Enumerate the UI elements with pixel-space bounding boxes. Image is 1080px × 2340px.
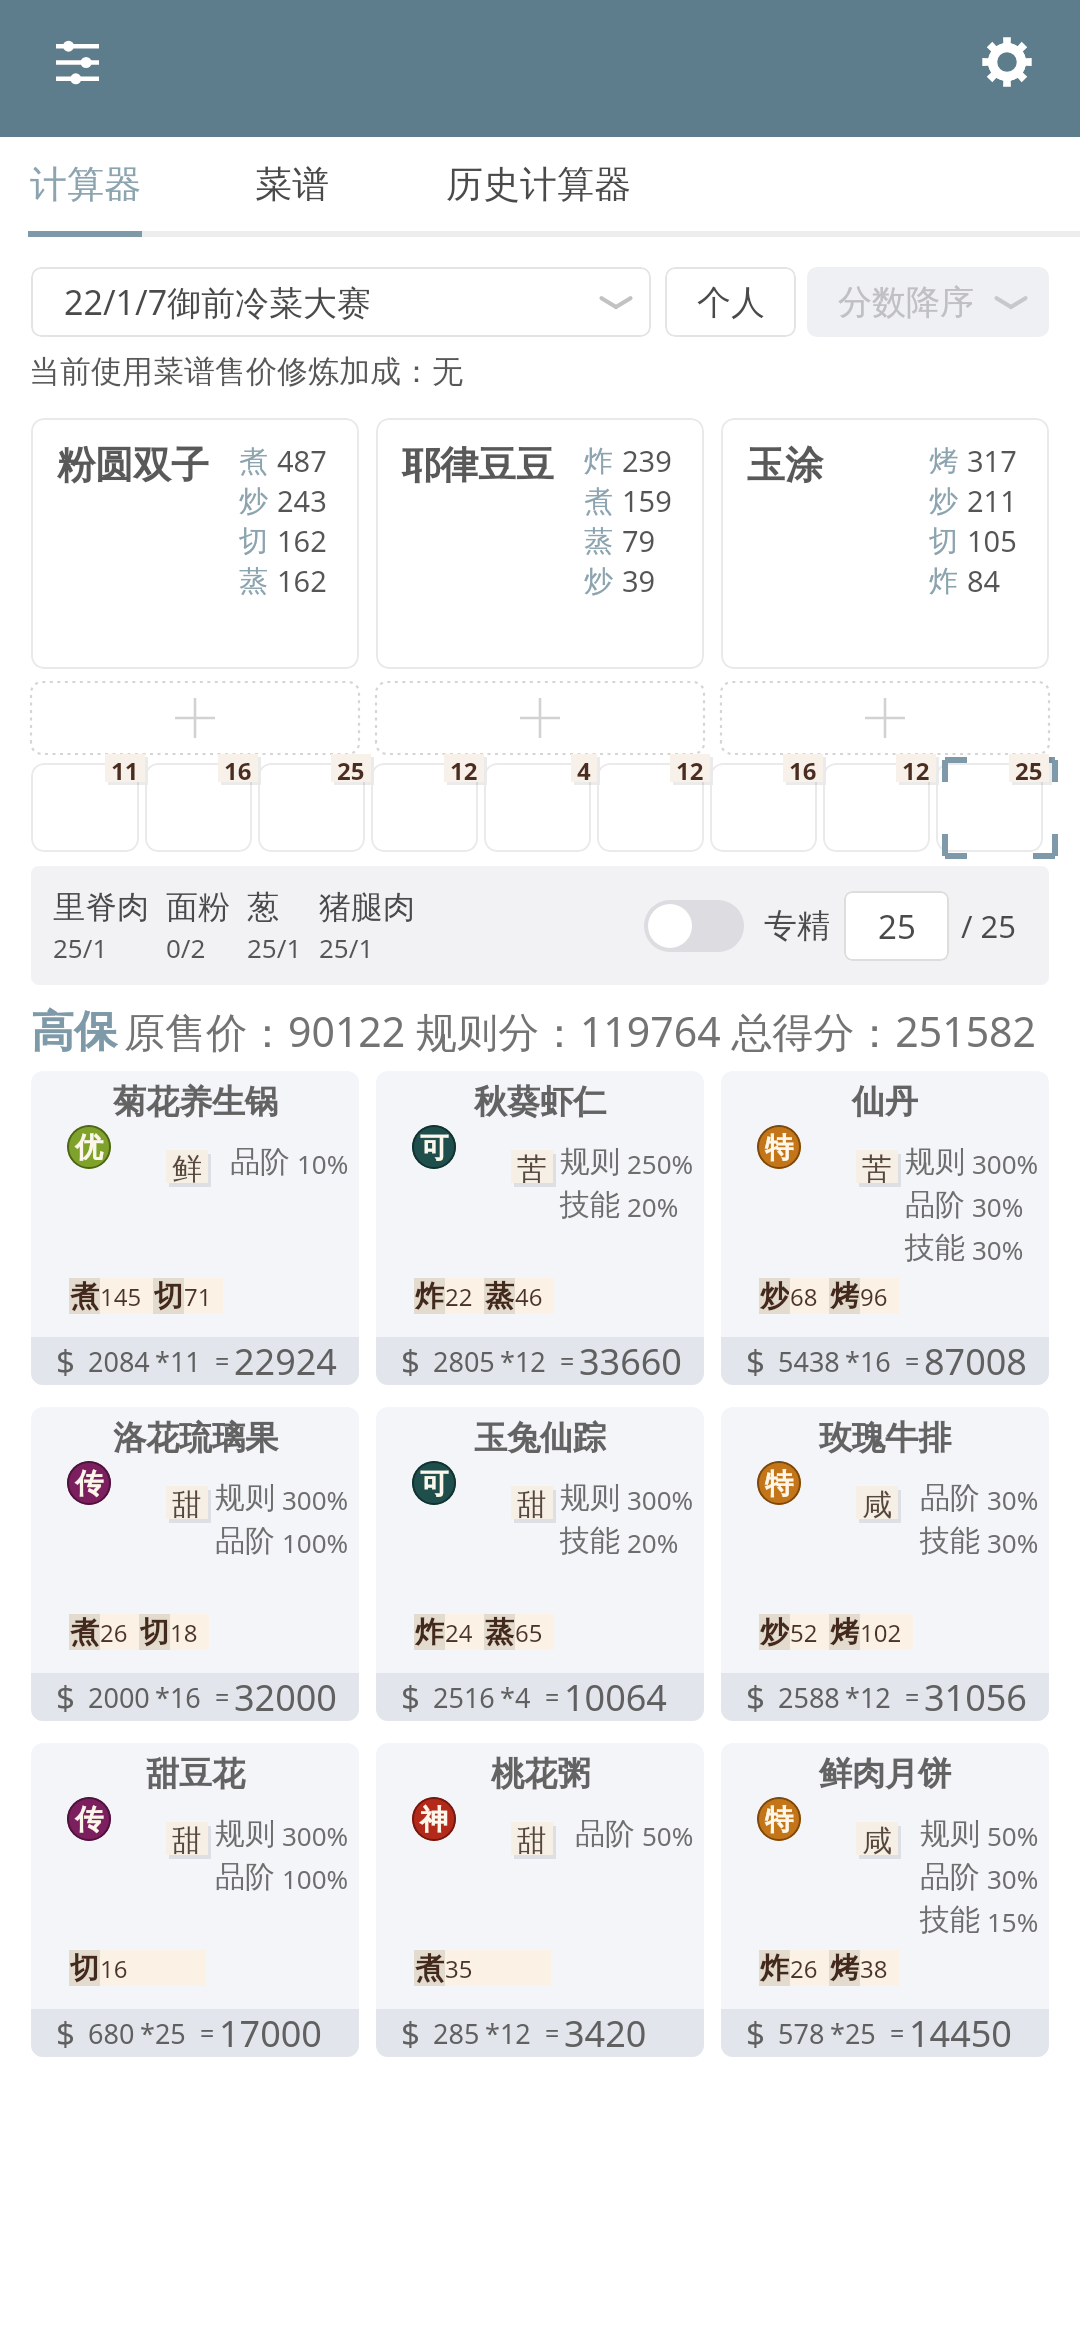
- button[interactable]: Add chef: [31, 682, 359, 754]
- staticText: 10064: [564, 1673, 667, 1721]
- button[interactable]: 分数降序: [807, 267, 1049, 337]
- button[interactable]: [710, 763, 817, 852]
- staticText: 39: [622, 561, 656, 600]
- staticText: 玉涂: [747, 441, 929, 489]
- staticText: 22924: [234, 1337, 337, 1385]
- staticText: 680: [88, 2015, 135, 2052]
- staticText: 84: [967, 561, 1001, 600]
- staticText: 25/1: [247, 930, 302, 965]
- staticText: 苦: [517, 1150, 547, 1183]
- staticText: 里脊肉: [53, 887, 149, 927]
- staticText: 特: [765, 1130, 793, 1165]
- staticText: 25/1: [319, 930, 374, 965]
- button[interactable]: 玫瑰牛排: [721, 1407, 1049, 1721]
- staticText: 煮: [415, 1950, 444, 1986]
- button[interactable]: 菜谱: [170, 137, 414, 231]
- staticText: 162: [277, 561, 327, 600]
- button[interactable]: 个人: [665, 267, 796, 337]
- staticText: $: [401, 1339, 420, 1384]
- button[interactable]: [936, 763, 1043, 852]
- button[interactable]: [823, 763, 930, 852]
- button[interactable]: 仙丹: [721, 1071, 1049, 1385]
- staticText: 25: [878, 904, 916, 949]
- button[interactable]: 25: [844, 891, 949, 961]
- staticText: 50%: [642, 1818, 694, 1853]
- staticText: =: [215, 1680, 230, 1714]
- staticText: 16: [100, 1952, 128, 1985]
- button[interactable]: Toggle specialization: [644, 900, 744, 952]
- button[interactable]: 甜豆花: [31, 1743, 359, 2057]
- button[interactable]: 鲜肉月饼: [721, 1743, 1049, 2057]
- staticText: 切: [929, 523, 958, 560]
- button[interactable]: 洛花琉璃果: [31, 1407, 359, 1721]
- staticText: =: [215, 1344, 230, 1378]
- staticText: 分数降序: [838, 281, 992, 324]
- staticText: 优: [75, 1130, 103, 1165]
- staticText: *12: [845, 1679, 891, 1716]
- staticText: 3420: [564, 2009, 647, 2057]
- button[interactable]: Settings: [957, 12, 1057, 112]
- staticText: 桃花粥: [491, 1753, 590, 1795]
- button[interactable]: 粉圆双子: [31, 418, 359, 669]
- button[interactable]: [145, 763, 252, 852]
- staticText: 26: [100, 1616, 128, 1649]
- button[interactable]: 历史计算器: [414, 137, 662, 231]
- button[interactable]: [258, 763, 365, 852]
- button[interactable]: 玉兔仙踪: [376, 1407, 704, 1721]
- staticText: 79: [622, 521, 656, 560]
- staticText: 品阶: [230, 1143, 290, 1181]
- button[interactable]: 22/1/7御前冷菜大赛: [31, 267, 651, 337]
- button[interactable]: Filters: [27, 12, 127, 112]
- staticText: =: [545, 2016, 560, 2050]
- staticText: $: [746, 1675, 765, 1720]
- button[interactable]: [484, 763, 591, 852]
- staticText: 2588: [778, 1679, 840, 1716]
- staticText: 玉兔仙踪: [474, 1417, 606, 1459]
- button[interactable]: Add chef: [721, 682, 1049, 754]
- staticText: *16: [155, 1679, 201, 1716]
- staticText: 鲜肉月饼: [819, 1753, 951, 1795]
- staticText: 品阶: [575, 1815, 635, 1853]
- staticText: 30%: [987, 1861, 1039, 1896]
- staticText: 专精: [764, 905, 830, 947]
- staticText: 炒: [760, 1614, 789, 1650]
- staticText: 甜豆花: [146, 1753, 245, 1795]
- staticText: 52: [790, 1616, 818, 1649]
- button[interactable]: [31, 763, 139, 852]
- staticText: *11: [155, 1343, 201, 1380]
- button[interactable]: 桃花粥: [376, 1743, 704, 2057]
- staticText: 102: [860, 1616, 902, 1649]
- button[interactable]: 计算器: [0, 137, 170, 231]
- staticText: 粉圆双子: [57, 441, 239, 489]
- staticText: 规则: [215, 1479, 275, 1517]
- staticText: 317: [967, 441, 1017, 480]
- button[interactable]: 菊花养生锅: [31, 1071, 359, 1385]
- staticText: 仙丹: [852, 1081, 918, 1123]
- staticText: 炒: [760, 1278, 789, 1314]
- button[interactable]: 玉涂: [721, 418, 1049, 669]
- staticText: $: [401, 2011, 420, 2056]
- staticText: 洛花琉璃果: [113, 1417, 278, 1459]
- staticText: 历史计算器: [446, 161, 631, 208]
- staticText: 煮: [70, 1278, 99, 1314]
- staticText: 咸: [862, 1822, 892, 1855]
- staticText: 68: [790, 1280, 818, 1313]
- button[interactable]: 秋葵虾仁: [376, 1071, 704, 1385]
- staticText: 品阶: [215, 1858, 275, 1896]
- staticText: 当前使用菜谱售价修炼加成：无: [29, 352, 463, 391]
- staticText: 规则: [920, 1815, 980, 1853]
- staticText: 鲜: [172, 1150, 202, 1183]
- button[interactable]: 耶律豆豆: [376, 418, 704, 669]
- staticText: 个人: [697, 281, 765, 324]
- button[interactable]: [597, 763, 704, 852]
- staticText: 250%: [627, 1146, 694, 1181]
- staticText: $: [56, 2011, 75, 2056]
- staticText: *16: [845, 1343, 891, 1380]
- button[interactable]: [371, 763, 478, 852]
- staticText: 规则: [560, 1479, 620, 1517]
- staticText: 11: [111, 754, 139, 782]
- staticText: 菊花养生锅: [113, 1081, 278, 1123]
- staticText: 炸: [584, 443, 613, 480]
- button[interactable]: Add chef: [376, 682, 704, 754]
- staticText: 239: [622, 441, 672, 480]
